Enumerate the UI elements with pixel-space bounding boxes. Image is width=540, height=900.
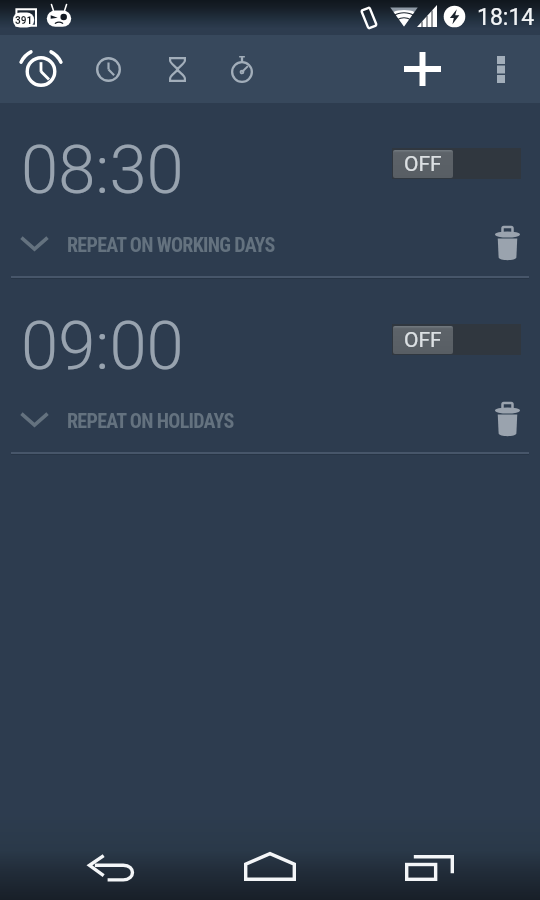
button[interactable]: Alarm (7, 35, 75, 103)
button[interactable]: Recents (379, 840, 479, 896)
staticText: REPEAT ON HOLIDAYS (67, 409, 234, 432)
button[interactable]: Back (62, 840, 162, 896)
button[interactable]: Delete alarm (484, 392, 530, 448)
button[interactable]: Alarm enabled toggle, off (392, 324, 521, 355)
button[interactable]: More options (477, 35, 525, 103)
button[interactable]: Clock (74, 35, 142, 103)
button[interactable]: Expand alarm (8, 392, 60, 448)
staticText: 18:14 (477, 4, 535, 31)
button[interactable]: 08:30 (0, 103, 540, 279)
staticText: OFF (404, 328, 442, 353)
staticText: 08:30 (21, 131, 184, 210)
button[interactable]: 09:00 (0, 279, 540, 455)
staticText: REPEAT ON WORKING DAYS (67, 233, 275, 256)
button[interactable]: Timer (143, 35, 211, 103)
button[interactable]: Delete alarm (484, 216, 530, 272)
staticText: 391 (15, 15, 33, 27)
staticText: OFF (404, 152, 442, 177)
staticText: 09:00 (21, 307, 184, 386)
button[interactable]: Stopwatch (208, 35, 276, 103)
button[interactable]: Alarm enabled toggle, off (392, 148, 521, 179)
button[interactable]: Home (220, 838, 320, 894)
button[interactable]: Add alarm (392, 35, 452, 103)
button[interactable]: Expand alarm (8, 216, 60, 272)
